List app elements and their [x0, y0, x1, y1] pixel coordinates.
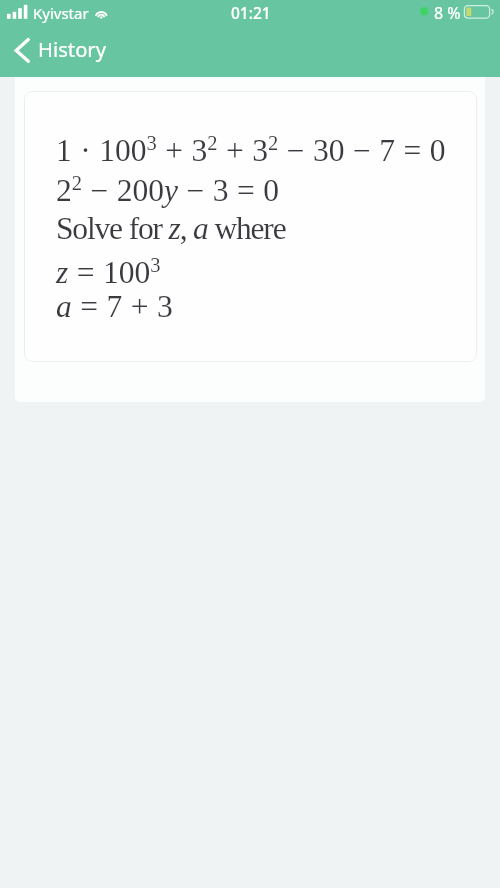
staticText: z = 1003 [56, 254, 161, 290]
staticText: 8 % [434, 2, 461, 24]
staticText: History [38, 35, 106, 63]
staticText: 01:21 [231, 2, 271, 23]
staticText: 22 − 200y − 3 = 0 [56, 172, 280, 208]
staticText: Kyivstar [33, 3, 89, 23]
staticText: Solve for z, a where [56, 211, 286, 246]
staticText: 1 · 1003 + 32 + 32 − 30 − 7 = 0 [56, 132, 446, 168]
button[interactable]: Back [2, 28, 42, 77]
button[interactable]: 1 · 1003 + 32 + 32 − 30 − 7 = 0 [24, 91, 477, 362]
staticText: a = 7 + 3 [56, 289, 173, 324]
